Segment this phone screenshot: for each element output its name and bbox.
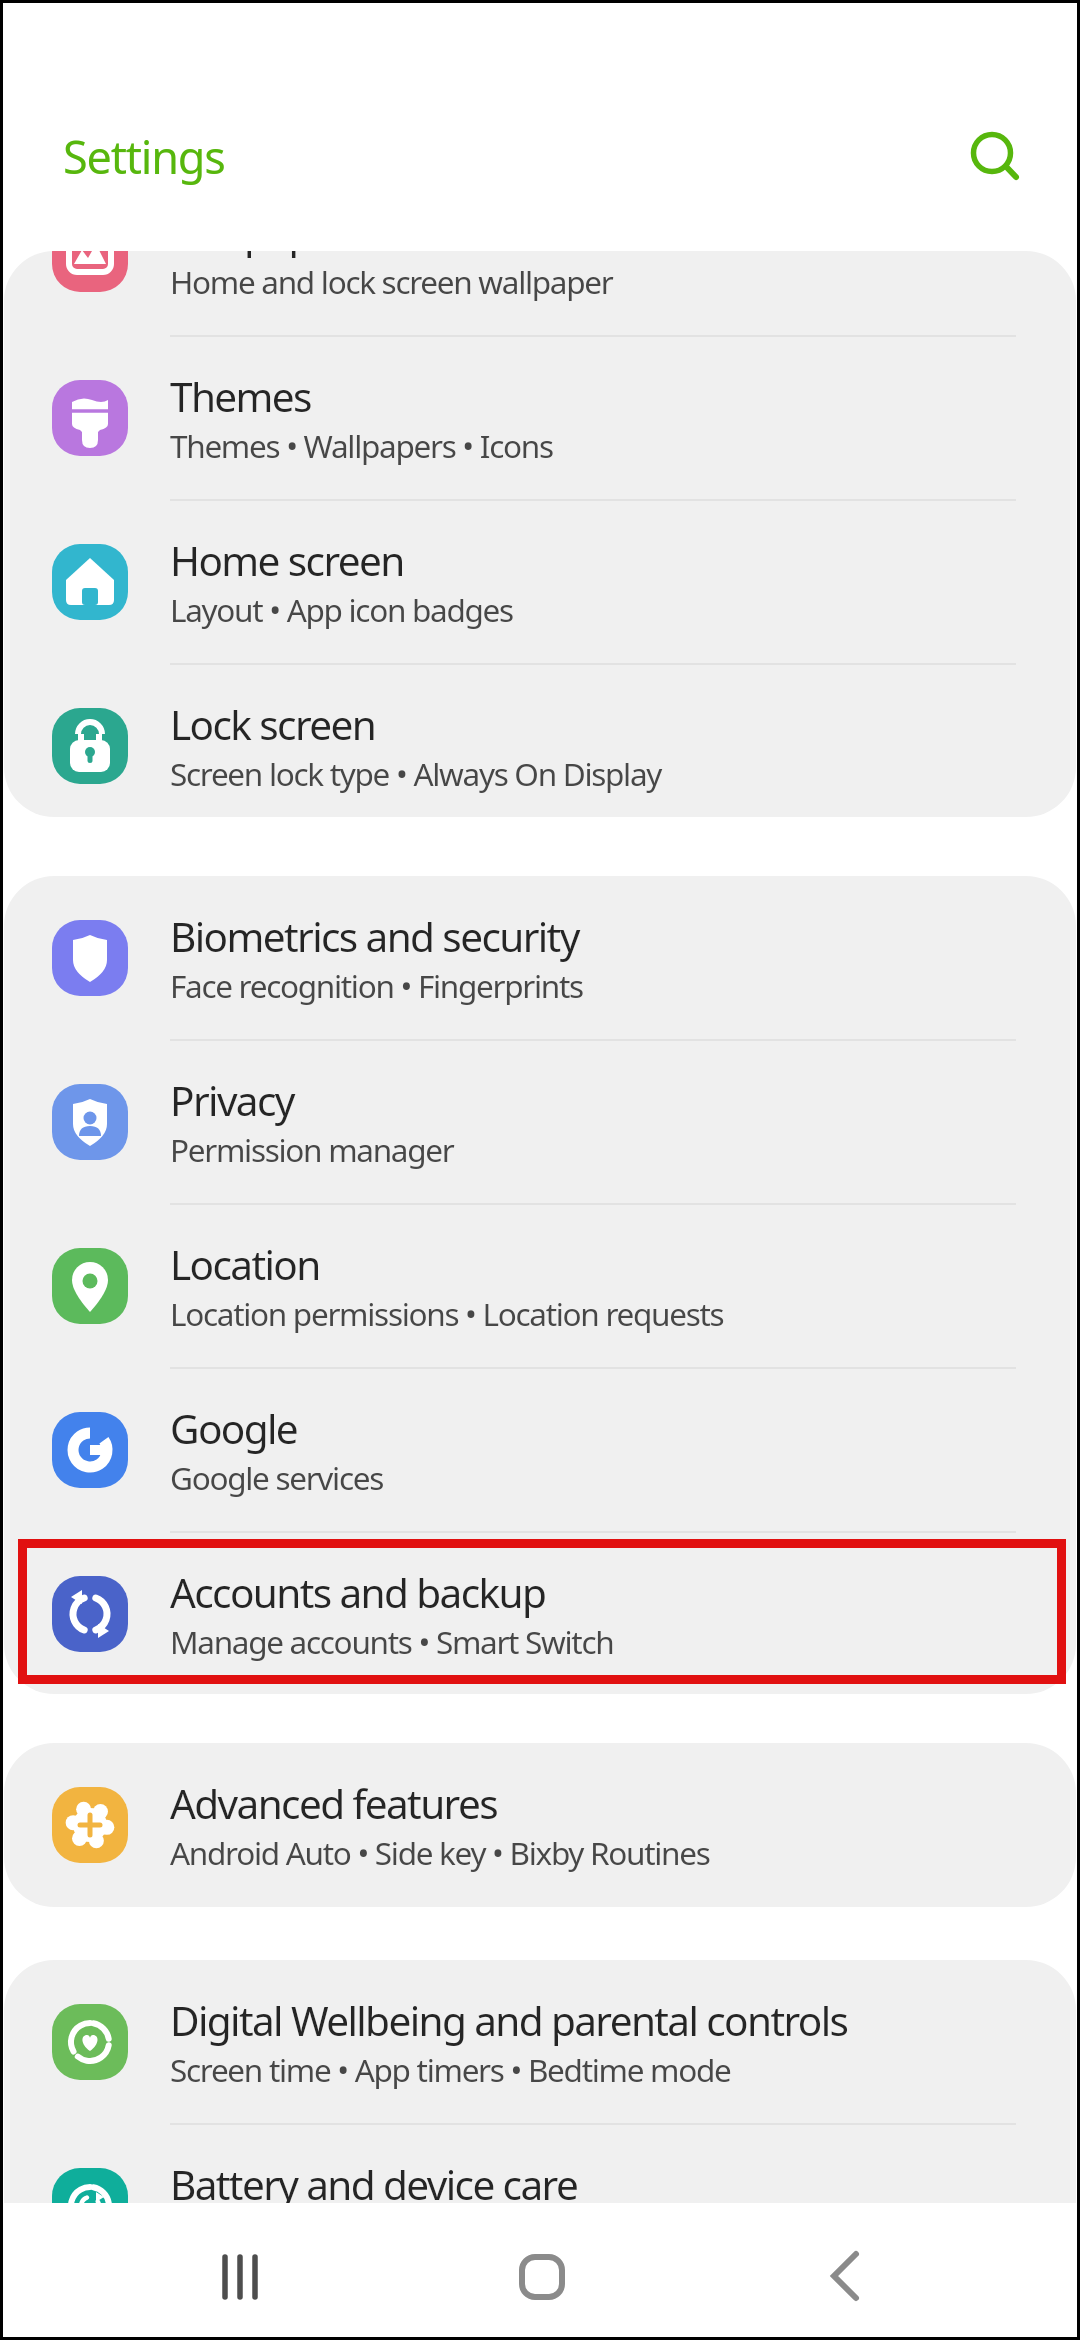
staticText: Home screen — [170, 533, 404, 588]
staticText: Android Auto • Side key • Bixby Routines — [170, 1831, 710, 1874]
staticText: Home and lock screen wallpaper — [170, 260, 613, 303]
staticText: Google — [170, 1401, 298, 1456]
button[interactable]: Location — [4, 1204, 1076, 1368]
button[interactable]: Biometrics and security — [4, 876, 1076, 1040]
button[interactable]: Privacy — [4, 1040, 1076, 1204]
staticText: Location — [170, 1237, 320, 1292]
button[interactable]: Themes — [4, 336, 1076, 500]
staticText: Location permissions • Location requests — [170, 1292, 724, 1335]
staticText: Permission manager — [170, 1128, 454, 1171]
staticText: Layout • App icon badges — [170, 588, 513, 631]
staticText: Privacy — [170, 1073, 294, 1128]
staticText: Lock screen — [170, 697, 376, 752]
staticText: Google services — [170, 1456, 383, 1499]
staticText: Wallpaper — [170, 251, 349, 260]
button[interactable]: Advanced features — [4, 1743, 1076, 1907]
staticText: Biometrics and security — [170, 909, 579, 964]
button[interactable] — [956, 118, 1032, 194]
staticText: Advanced features — [170, 1776, 497, 1831]
button[interactable]: Home screen — [4, 500, 1076, 664]
staticText: Screen lock type • Always On Display — [170, 752, 662, 795]
button[interactable]: Lock screen — [4, 664, 1076, 817]
button[interactable] — [502, 2237, 582, 2317]
staticText: Themes — [170, 369, 311, 424]
button[interactable]: Accounts and backup — [4, 1532, 1076, 1694]
button[interactable]: Wallpaper — [4, 251, 1076, 336]
button[interactable] — [200, 2237, 280, 2317]
staticText: Digital Wellbeing and parental controls — [170, 1993, 848, 2048]
button[interactable]: Battery and device care — [4, 2124, 1076, 2203]
button[interactable]: Digital Wellbeing and parental controls — [4, 1960, 1076, 2124]
staticText: Accounts and backup — [170, 1565, 546, 1620]
staticText: Themes • Wallpapers • Icons — [170, 424, 553, 467]
staticText: Screen time • App timers • Bedtime mode — [170, 2048, 731, 2091]
staticText: Manage accounts • Smart Switch — [170, 1620, 614, 1663]
button[interactable] — [805, 2237, 885, 2317]
staticText: Battery and device care — [170, 2157, 578, 2203]
staticText: Face recognition • Fingerprints — [170, 964, 583, 1007]
staticText: Settings — [63, 126, 225, 187]
button[interactable]: Google — [4, 1368, 1076, 1532]
